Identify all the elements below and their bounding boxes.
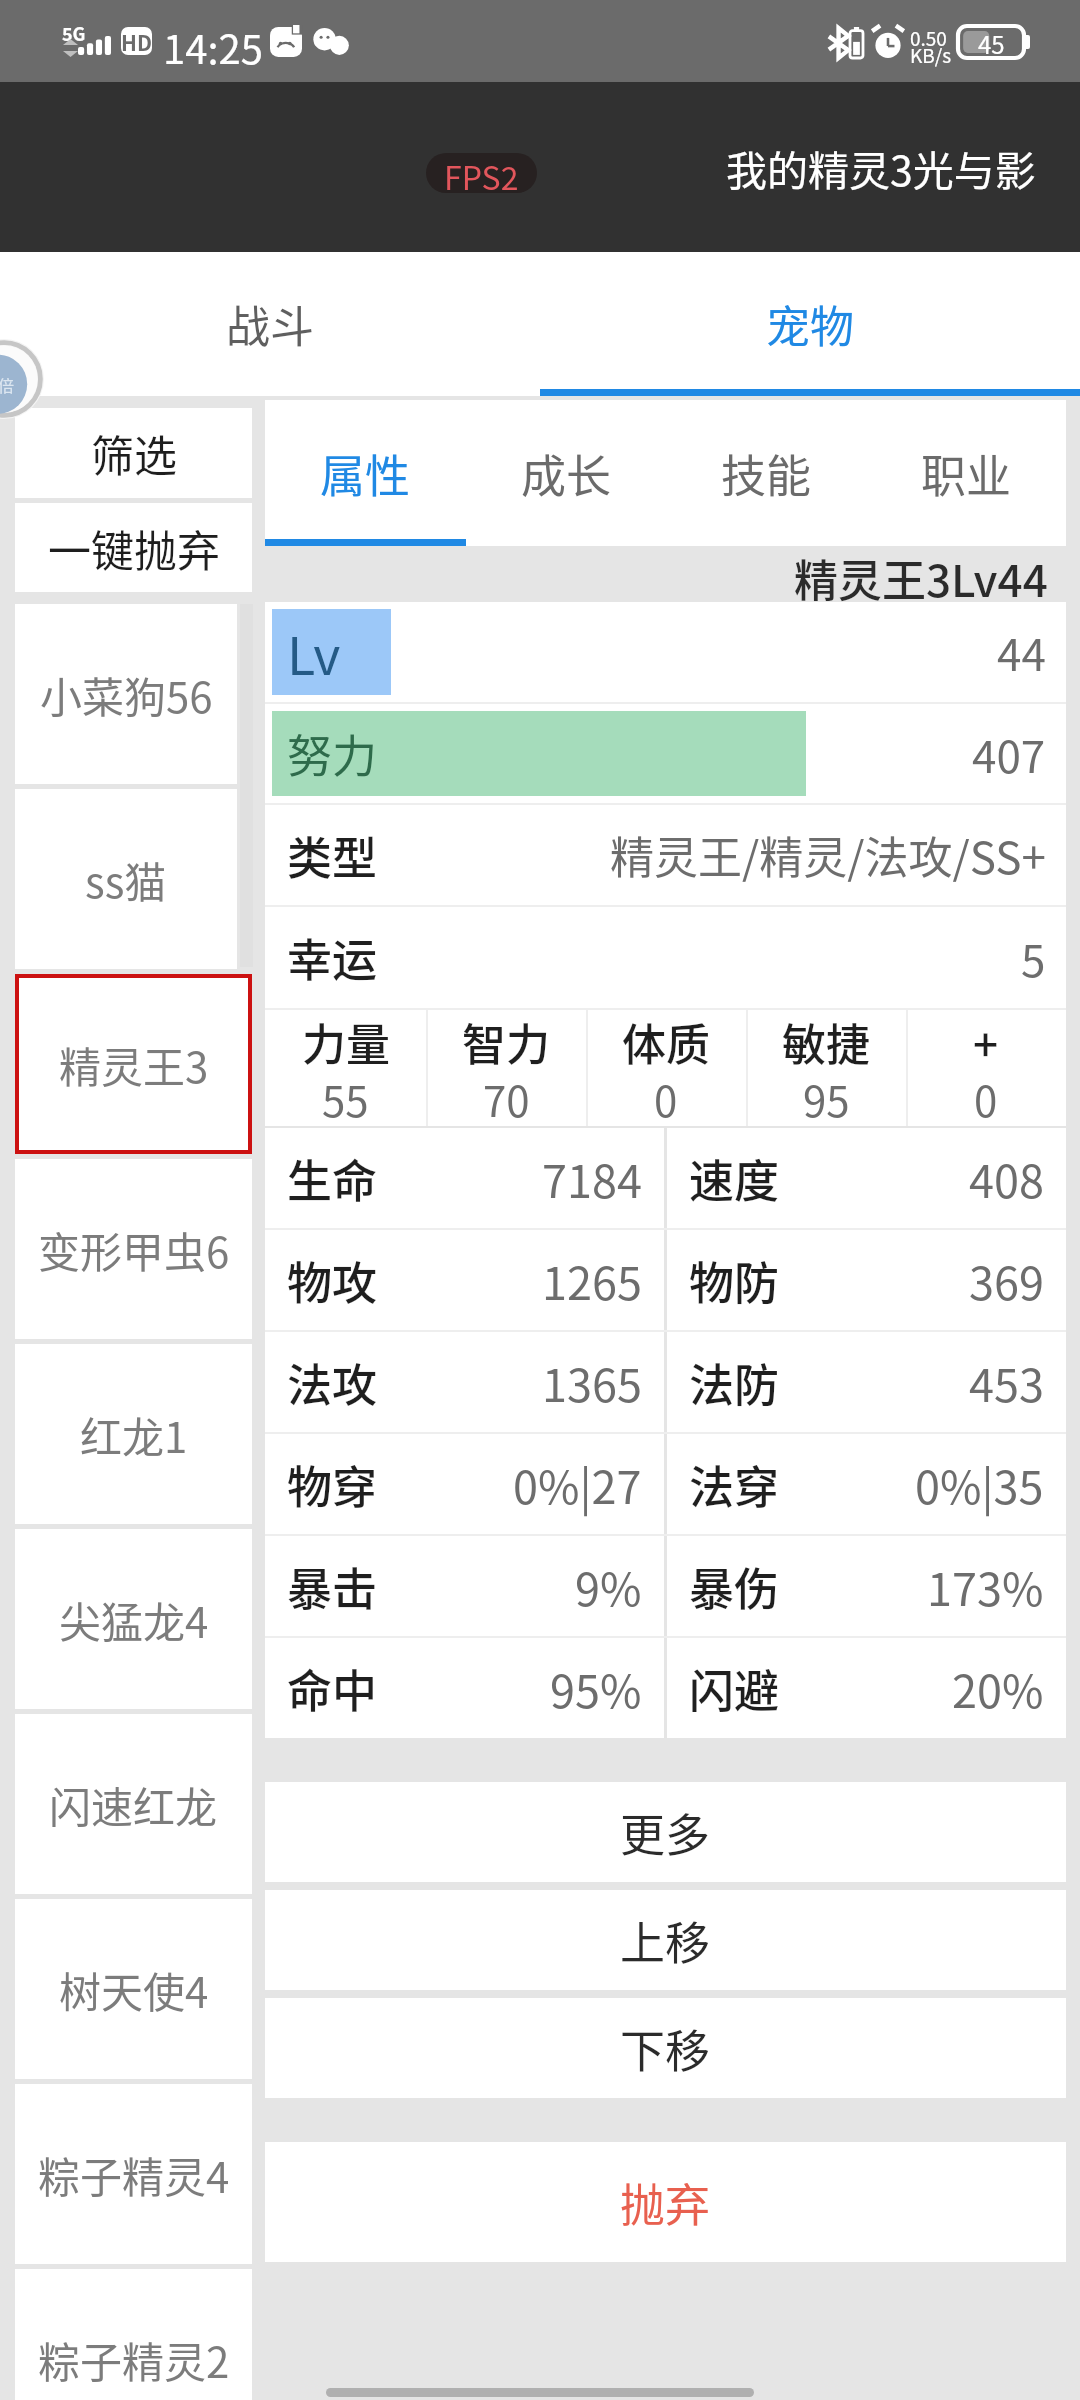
staticText: 法防	[689, 1350, 780, 1415]
button[interactable]: 职业	[866, 400, 1066, 546]
staticText: 453	[969, 1350, 1044, 1415]
staticText: 精灵王/精灵/法攻/SS+	[610, 823, 1046, 887]
button[interactable]: 上移	[265, 1890, 1066, 1990]
staticText: 173%	[927, 1554, 1044, 1619]
button[interactable]: 筛选	[15, 408, 252, 498]
staticText: 树天使4	[59, 1959, 209, 2020]
staticText: 44	[997, 620, 1046, 684]
button[interactable]: 一键抛弃	[15, 503, 252, 592]
staticText: 闪避	[689, 1656, 780, 1721]
staticText: 生命	[287, 1146, 378, 1211]
staticText: 宠物	[766, 292, 854, 356]
staticText: 红龙1	[80, 1404, 188, 1465]
button[interactable]: 精灵王3	[15, 974, 252, 1154]
staticText: 尖猛龙4	[59, 1589, 209, 1650]
staticText: 0%|27	[513, 1452, 642, 1517]
staticText: 物穿	[287, 1452, 378, 1517]
staticText: 0	[654, 1068, 678, 1126]
staticText: 速度	[689, 1146, 780, 1211]
staticText: 5	[1021, 926, 1046, 990]
staticText: 精灵王3Lv44	[794, 546, 1048, 602]
staticText: 精灵王3	[59, 1034, 209, 1095]
staticText: 45	[978, 26, 1005, 58]
staticText: 0%|35	[915, 1452, 1044, 1517]
staticText: 408	[969, 1146, 1044, 1211]
button[interactable]: FPS2	[426, 153, 537, 193]
button[interactable]: ss猫	[15, 789, 237, 969]
staticText: 95	[803, 1068, 850, 1126]
button[interactable]: 闪速红龙	[15, 1714, 252, 1894]
staticText: 更多	[620, 1800, 711, 1865]
staticText: 物防	[689, 1248, 780, 1313]
staticText: 95%	[550, 1656, 642, 1721]
staticText: 暴击	[287, 1554, 378, 1619]
staticText: 法穿	[689, 1452, 780, 1517]
staticText: HD	[121, 27, 152, 55]
staticText: 1365	[542, 1350, 642, 1415]
staticText: 敏捷	[782, 1010, 870, 1074]
staticText: 法攻	[287, 1350, 378, 1415]
staticText: 筛选	[91, 422, 177, 484]
staticText: 力量	[302, 1010, 390, 1074]
staticText: 努力	[287, 721, 378, 786]
staticText: 暴伤	[689, 1554, 780, 1619]
button[interactable]: 粽子精灵4	[15, 2084, 252, 2264]
button[interactable]: 技能	[666, 400, 866, 546]
staticText: 命中	[287, 1656, 378, 1721]
staticText: 闪速红龙	[49, 1774, 218, 1835]
staticText: 9%	[575, 1554, 642, 1619]
button[interactable]: 属性	[265, 400, 466, 546]
staticText: 战斗	[226, 292, 314, 356]
staticText: 技能	[721, 441, 812, 506]
staticText: 智力	[462, 1010, 550, 1074]
staticText: 369	[969, 1248, 1044, 1313]
button[interactable]: 红龙1	[15, 1344, 252, 1524]
staticText: 类型	[287, 823, 378, 888]
staticText: 职业	[921, 441, 1012, 506]
button[interactable]: 粽子精灵2	[15, 2269, 252, 2400]
staticText: 0	[974, 1068, 998, 1126]
button[interactable]: 树天使4	[15, 1899, 252, 2079]
staticText: 7184	[542, 1146, 642, 1211]
staticText: 20%	[952, 1656, 1044, 1721]
staticText: Lv	[287, 615, 341, 690]
staticText: 一键抛弃	[48, 517, 220, 579]
staticText: 物攻	[287, 1248, 378, 1313]
staticText: FPS2	[444, 153, 519, 193]
staticText: 变形甲虫6	[38, 1219, 230, 1280]
button[interactable]: 变形甲虫6	[15, 1159, 252, 1339]
staticText: 0.50	[910, 24, 947, 52]
staticText: 上移	[620, 1908, 711, 1973]
staticText: ss猫	[85, 849, 167, 910]
staticText: 14:25	[163, 18, 263, 76]
staticText: 55	[322, 1068, 369, 1126]
staticText: +	[973, 1010, 999, 1074]
button[interactable]: 成长	[466, 400, 666, 546]
staticText: 1265	[542, 1248, 642, 1313]
staticText: 幸运	[287, 925, 378, 990]
button[interactable]: 抛弃	[265, 2142, 1066, 2262]
staticText: KB/s	[910, 41, 952, 69]
staticText: 我的精灵3光与影	[726, 138, 1036, 197]
button[interactable]: 下移	[265, 1998, 1066, 2098]
button[interactable]: 战斗	[0, 252, 540, 396]
button[interactable]: 小菜狗56	[15, 604, 237, 784]
staticText: 粽子精灵2	[38, 2329, 230, 2390]
button[interactable]: 尖猛龙4	[15, 1529, 252, 1709]
staticText: 407	[972, 722, 1046, 786]
button[interactable]: 更多	[265, 1782, 1066, 1882]
staticText: 属性	[320, 441, 411, 506]
staticText: 体质	[622, 1010, 710, 1074]
staticText: 抛弃	[620, 2170, 711, 2235]
staticText: 5G	[62, 20, 86, 46]
staticText: 小菜狗56	[40, 664, 213, 725]
button[interactable]: 宠物	[540, 252, 1080, 396]
staticText: 双倍	[0, 373, 15, 396]
staticText: 70	[483, 1068, 530, 1126]
staticText: 成长	[521, 441, 612, 506]
button[interactable]: Floating assistant	[0, 339, 44, 419]
staticText: 粽子精灵4	[38, 2144, 230, 2205]
staticText: 下移	[620, 2016, 711, 2081]
